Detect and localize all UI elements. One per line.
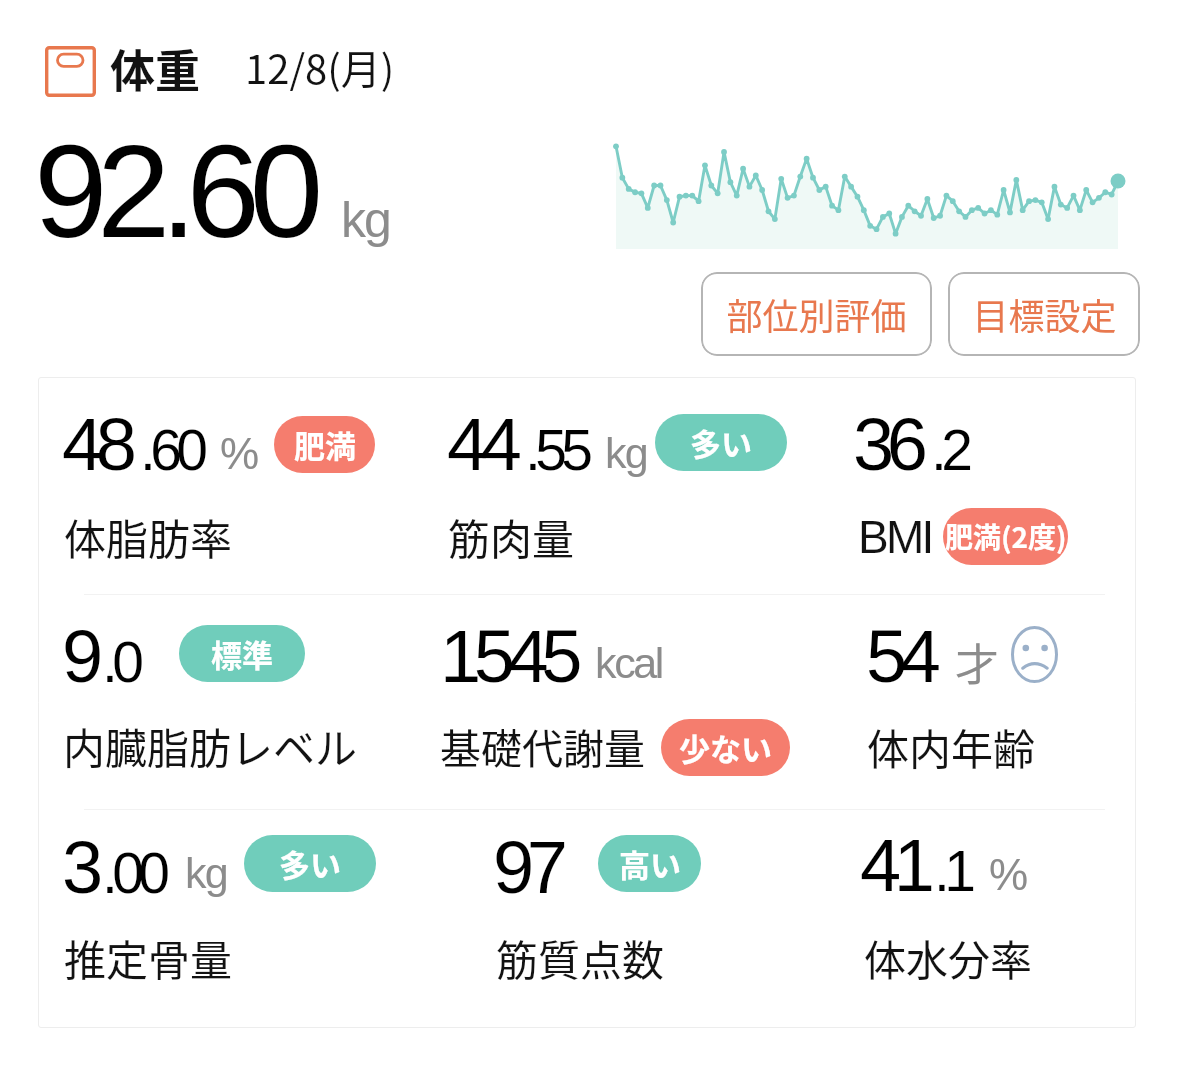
staticText: .55 bbox=[525, 418, 588, 482]
staticText: 41 bbox=[860, 824, 928, 907]
staticText: 筋質点数 bbox=[496, 927, 665, 988]
staticText: % bbox=[220, 429, 260, 478]
button[interactable]: 目標設定 bbox=[948, 272, 1140, 356]
button[interactable] bbox=[404, 377, 770, 594]
staticText: 部位別評価 bbox=[726, 288, 907, 340]
staticText: 9 bbox=[62, 615, 96, 698]
staticText: .60 bbox=[140, 418, 203, 482]
staticText: 54 bbox=[866, 615, 934, 698]
other: Mood bbox=[1011, 626, 1061, 686]
staticText: 3 bbox=[62, 826, 96, 909]
staticText: 多い bbox=[279, 841, 341, 886]
staticText: 標準 bbox=[211, 631, 273, 676]
staticText: kg bbox=[185, 849, 227, 897]
staticText: .2 bbox=[931, 418, 968, 482]
staticText: 体脂肪率 bbox=[64, 506, 233, 567]
staticText: 体重 bbox=[110, 36, 201, 101]
staticText: 肥満 bbox=[294, 422, 356, 467]
staticText: 内臓脂肪レベル bbox=[63, 715, 358, 776]
staticText: 92.60 bbox=[34, 118, 313, 265]
button[interactable]: 部位別評価 bbox=[701, 272, 932, 356]
staticText: 48 bbox=[62, 403, 130, 486]
staticText: kg bbox=[605, 429, 647, 477]
staticText: .00 bbox=[102, 841, 165, 905]
staticText: kcal bbox=[595, 639, 663, 687]
button[interactable] bbox=[770, 377, 1136, 594]
staticText: % bbox=[989, 850, 1029, 899]
button[interactable] bbox=[770, 595, 1136, 810]
staticText: 12/8(月) bbox=[245, 38, 395, 96]
staticText: 肥満(2度) bbox=[945, 516, 1067, 557]
staticText: 多い bbox=[690, 420, 752, 465]
staticText: .0 bbox=[102, 630, 139, 694]
staticText: .1 bbox=[934, 839, 971, 903]
staticText: 36 bbox=[853, 403, 921, 486]
button[interactable] bbox=[404, 810, 770, 1028]
staticText: 筋肉量 bbox=[448, 506, 575, 567]
staticText: 体水分率 bbox=[864, 927, 1033, 988]
button[interactable] bbox=[38, 595, 404, 810]
button[interactable]: Weight scale bbox=[45, 46, 97, 98]
staticText: 目標設定 bbox=[972, 288, 1117, 340]
staticText: kg bbox=[341, 192, 390, 248]
staticText: 97 bbox=[493, 826, 561, 909]
button[interactable] bbox=[38, 377, 404, 594]
staticText: 高い bbox=[619, 841, 681, 886]
staticText: BMI bbox=[858, 511, 932, 562]
button[interactable] bbox=[404, 595, 770, 810]
button[interactable] bbox=[38, 810, 404, 1028]
staticText: 1545 bbox=[440, 615, 576, 698]
staticText: 少ない bbox=[679, 725, 772, 770]
staticText: 推定骨量 bbox=[64, 927, 233, 988]
staticText: 体内年齢 bbox=[867, 716, 1036, 777]
staticText: 才 bbox=[955, 630, 999, 694]
staticText: 基礎代謝量 bbox=[440, 716, 645, 775]
button[interactable] bbox=[770, 810, 1136, 1028]
staticText: 44 bbox=[447, 403, 515, 486]
